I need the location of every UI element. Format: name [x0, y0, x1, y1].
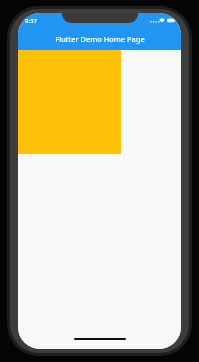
staticText: 9:37: [25, 17, 37, 25]
button[interactable]: Flutter Demo Home Page: [18, 28, 181, 50]
other: Debug banner: [147, 13, 181, 47]
staticText: Flutter Demo Home Page: [55, 34, 145, 44]
